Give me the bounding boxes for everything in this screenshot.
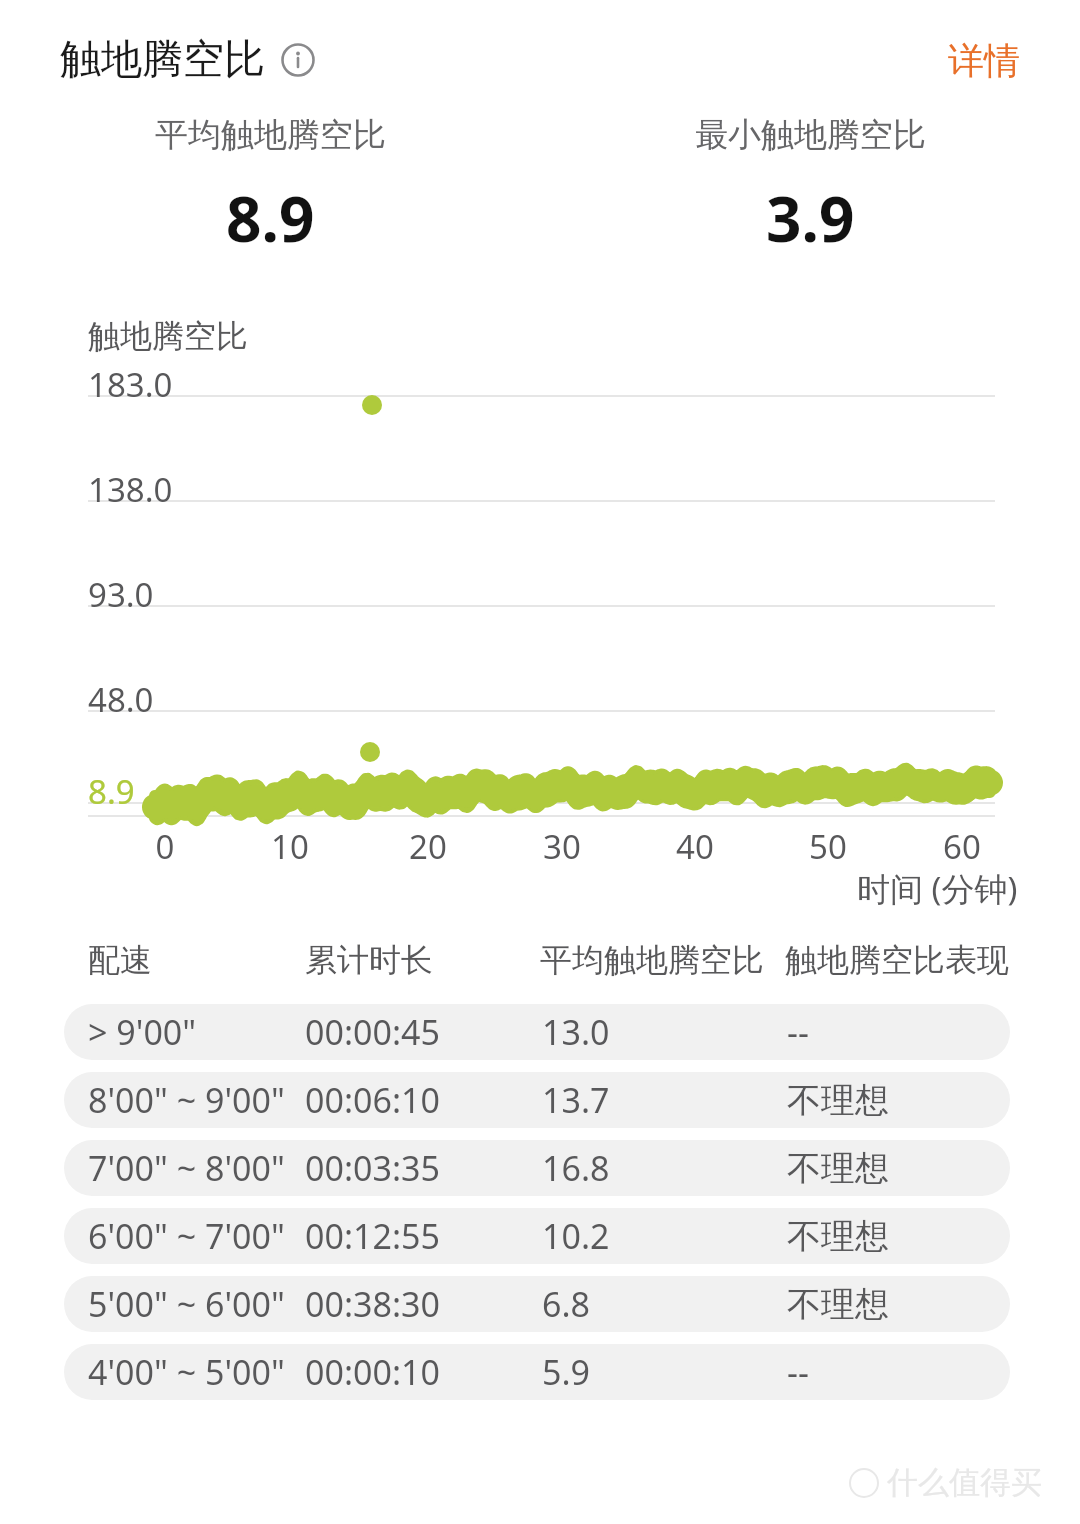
staticText: 平均触地腾空比	[155, 114, 386, 156]
staticText: 00:12:55	[305, 1213, 542, 1259]
button[interactable]: 触地腾空比	[60, 34, 315, 86]
staticText: 平均触地腾空比	[540, 940, 785, 980]
staticText: 触地腾空比	[60, 34, 265, 86]
staticText: --	[787, 1349, 809, 1395]
staticText: 00:06:10	[305, 1077, 542, 1123]
staticText: 触地腾空比表现	[785, 940, 1009, 980]
staticText: 5'00" ~ 6'00"	[88, 1281, 305, 1327]
staticText: 3.9	[766, 176, 855, 260]
button[interactable]: > 9'00"	[64, 1004, 1010, 1060]
staticText: > 9'00"	[88, 1009, 305, 1055]
staticText: 16.8	[542, 1145, 787, 1191]
staticText: --	[787, 1009, 809, 1055]
staticText: 时间 (分钟)	[857, 866, 1018, 911]
staticText: 00:00:10	[305, 1349, 542, 1395]
staticText: 40	[669, 824, 721, 869]
staticText: 8.9	[88, 769, 135, 814]
staticText: 00:00:45	[305, 1009, 542, 1055]
staticText: 30	[536, 824, 588, 869]
staticText: 138.0	[88, 467, 173, 512]
staticText: 13.7	[542, 1077, 787, 1123]
staticText: 60	[936, 824, 988, 869]
staticText: 不理想	[787, 1283, 889, 1326]
staticText: 不理想	[787, 1215, 889, 1258]
staticText: 00:03:35	[305, 1145, 542, 1191]
staticText: 最小触地腾空比	[695, 114, 926, 156]
staticText: 累计时长	[305, 940, 540, 980]
staticText: 详情	[948, 38, 1020, 83]
staticText: 触地腾空比	[88, 316, 248, 356]
staticText: 7'00" ~ 8'00"	[88, 1145, 305, 1191]
staticText: 不理想	[787, 1079, 889, 1122]
staticText: 5.9	[542, 1349, 787, 1395]
staticText: 6.8	[542, 1281, 787, 1327]
button[interactable]: 7'00" ~ 8'00"	[64, 1140, 1010, 1196]
button[interactable]: 6'00" ~ 7'00"	[64, 1208, 1010, 1264]
button[interactable]: 8'00" ~ 9'00"	[64, 1072, 1010, 1128]
staticText: 93.0	[88, 572, 154, 617]
button[interactable]: 平均触地腾空比	[0, 120, 540, 260]
staticText: 13.0	[542, 1009, 787, 1055]
staticText: 不理想	[787, 1147, 889, 1190]
staticText: 10	[264, 824, 316, 869]
staticText: 6'00" ~ 7'00"	[88, 1213, 305, 1259]
button[interactable]: 5'00" ~ 6'00"	[64, 1276, 1010, 1332]
staticText: 00:38:30	[305, 1281, 542, 1327]
button[interactable]: 4'00" ~ 5'00"	[64, 1344, 1010, 1400]
staticText: 20	[402, 824, 454, 869]
staticText: 8'00" ~ 9'00"	[88, 1077, 305, 1123]
staticText: 50	[802, 824, 854, 869]
staticText: 什么值得买	[887, 1463, 1042, 1502]
button[interactable]: Information	[281, 43, 315, 77]
staticText: 10.2	[542, 1213, 787, 1259]
staticText: 配速	[88, 940, 305, 980]
staticText: 183.0	[88, 362, 173, 407]
staticText: 0	[139, 824, 191, 869]
staticText: 48.0	[88, 677, 154, 722]
button[interactable]: 最小触地腾空比	[540, 120, 1080, 260]
staticText: 8.9	[226, 176, 315, 260]
button[interactable]: 详情	[948, 38, 1020, 83]
staticText: 4'00" ~ 5'00"	[88, 1349, 305, 1395]
